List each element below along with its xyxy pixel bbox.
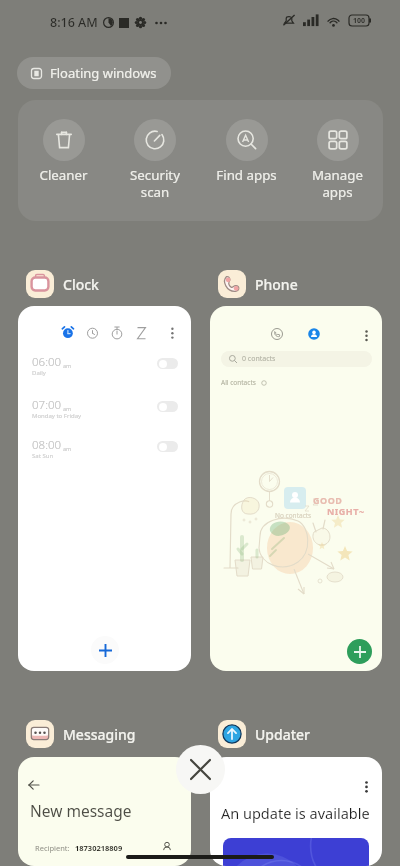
button[interactable]: Updater xyxy=(218,720,311,748)
button[interactable]: 0 contacts xyxy=(210,306,382,671)
button[interactable]: Add contact xyxy=(347,639,372,664)
button[interactable]: Find apps xyxy=(201,100,292,184)
button[interactable]: Messaging xyxy=(26,720,136,748)
staticText: NIGHT~ xyxy=(327,505,365,517)
staticText: Clock xyxy=(63,275,99,294)
staticText: All contacts xyxy=(221,378,256,387)
staticText: 08:00 xyxy=(32,437,62,453)
button[interactable]: Toggle alarm xyxy=(157,401,178,412)
staticText: Updater xyxy=(255,725,311,744)
button[interactable]: Floating windows xyxy=(17,57,171,89)
staticText: Floating windows xyxy=(50,64,157,82)
button[interactable]: 0 contacts xyxy=(221,351,372,367)
staticText: am xyxy=(63,362,72,369)
staticText: 100 xyxy=(353,16,366,26)
staticText: Cleaner xyxy=(39,166,88,184)
staticText: 8:16 AM xyxy=(50,14,98,31)
staticText: Find apps xyxy=(216,166,277,184)
staticText: Security scan xyxy=(130,166,180,200)
staticText: Recipient: xyxy=(35,843,70,853)
staticText: No contacts xyxy=(275,511,312,520)
button[interactable]: Add alarm xyxy=(91,636,119,664)
staticText: am xyxy=(63,445,72,452)
staticText: 06:00 xyxy=(32,354,62,370)
staticText: An update is available xyxy=(221,803,370,823)
staticText: GOOD xyxy=(313,494,343,506)
staticText: Sat Sun xyxy=(32,452,54,460)
staticText: 18730218809 xyxy=(75,843,123,853)
staticText: am xyxy=(63,405,72,412)
staticText: Messaging xyxy=(63,725,136,744)
button[interactable]: Clock xyxy=(26,270,99,298)
button[interactable]: New message xyxy=(18,757,191,866)
staticText: Daily xyxy=(32,369,46,377)
staticText: Monday to Friday xyxy=(32,412,82,420)
button[interactable]: Security scan xyxy=(109,100,200,200)
staticText: Manage apps xyxy=(312,166,363,200)
button[interactable]: 06:00 xyxy=(18,306,191,671)
button[interactable]: An update is available xyxy=(210,757,382,866)
staticText: Phone xyxy=(255,275,298,294)
button[interactable]: Phone xyxy=(218,270,298,298)
button[interactable]: Cleaner xyxy=(18,100,109,184)
staticText: 07:00 xyxy=(32,397,62,413)
button[interactable]: Toggle alarm xyxy=(157,358,178,369)
button[interactable]: Toggle alarm xyxy=(157,441,178,452)
staticText: New message xyxy=(30,800,132,821)
button[interactable]: Close all xyxy=(176,745,225,794)
staticText: 0 contacts xyxy=(242,354,276,364)
button[interactable]: Manage apps xyxy=(292,100,383,200)
